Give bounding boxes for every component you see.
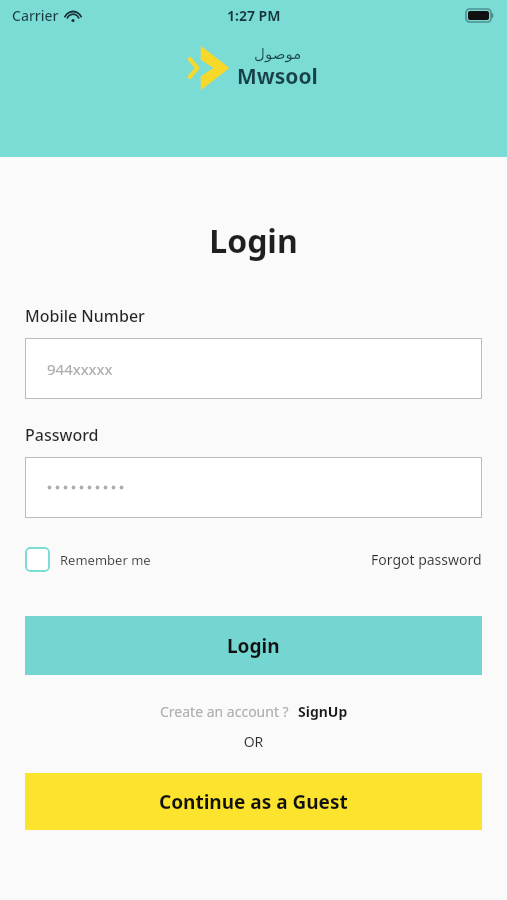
- button[interactable]: Login: [25, 616, 482, 675]
- staticText: موصول: [254, 45, 302, 62]
- staticText: Forgot password: [371, 550, 482, 569]
- staticText: Continue as a Guest: [159, 789, 348, 815]
- staticText: Mwsool: [237, 62, 318, 91]
- staticText: 1:27 PM: [227, 6, 281, 25]
- button[interactable]: SignUp: [298, 702, 348, 721]
- staticText: OR: [25, 732, 482, 751]
- staticText: Mobile Number: [25, 305, 145, 327]
- staticText: Login: [25, 219, 482, 263]
- button[interactable]: Continue as a Guest: [25, 773, 482, 830]
- staticText: Carrier: [12, 6, 59, 25]
- button[interactable]: Remember me: [25, 543, 151, 576]
- staticText: Remember me: [60, 551, 151, 569]
- button[interactable]: 944xxxxx: [25, 338, 482, 399]
- staticText: Create an account ?: [160, 702, 289, 721]
- button[interactable]: Forgot password: [371, 546, 482, 573]
- button[interactable]: [25, 457, 482, 518]
- staticText: 944xxxxx: [47, 359, 113, 379]
- staticText: Login: [227, 633, 280, 659]
- staticText: Password: [25, 424, 99, 446]
- staticText: SignUp: [298, 702, 348, 721]
